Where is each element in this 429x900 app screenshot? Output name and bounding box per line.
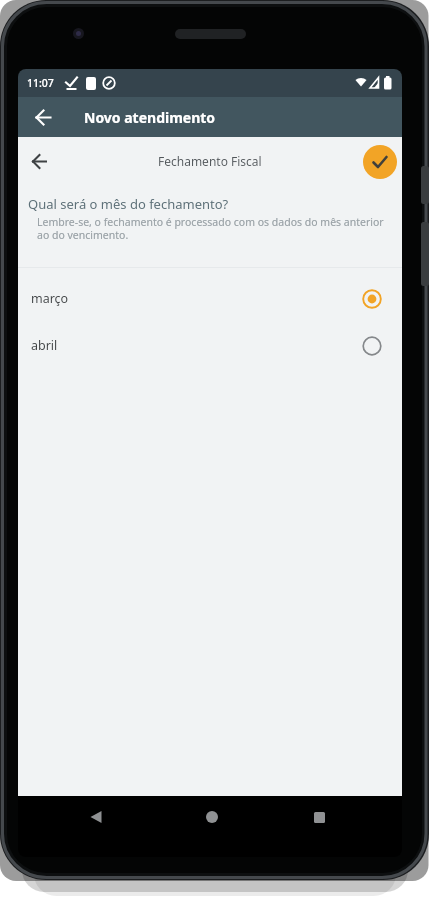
staticText: 11:07 [27,76,54,90]
staticText: Novo atendimento [84,108,216,127]
button[interactable] [303,801,335,833]
staticText: Fechamento Fiscal [158,153,262,169]
staticText: março [31,290,69,307]
staticText: abril [31,337,58,354]
button[interactable] [363,145,397,179]
button[interactable] [28,150,50,172]
button[interactable]: março [18,275,402,322]
button[interactable] [31,105,55,129]
button[interactable] [80,801,112,833]
button[interactable] [196,801,228,833]
button[interactable]: abril [18,322,402,369]
staticText: Qual será o mês do fechamento? [28,195,229,213]
staticText: Lembre-se, o fechamento é processado com… [37,215,384,242]
